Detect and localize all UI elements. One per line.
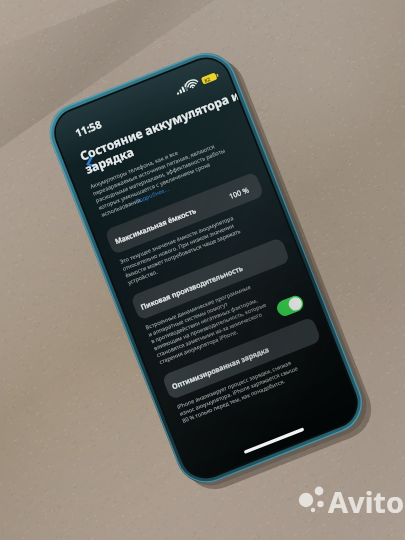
button[interactable]: Photo of iPhone battery health screen (0, 0, 405, 540)
